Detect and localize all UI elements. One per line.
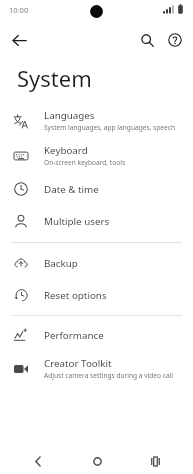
- staticText: Creator Toolkit: [44, 357, 112, 370]
- button[interactable]: Help: [162, 27, 188, 53]
- button[interactable]: Home: [77, 448, 117, 474]
- button[interactable]: Back: [18, 448, 58, 474]
- staticText: Multiple users: [44, 215, 110, 228]
- button[interactable]: Languages: [0, 103, 193, 138]
- button[interactable]: Multiple users: [0, 205, 193, 237]
- button[interactable]: Performance: [0, 319, 193, 351]
- staticText: Backup: [44, 257, 78, 270]
- staticText: Date & time: [44, 183, 99, 196]
- staticText: On-screen keyboard, tools: [44, 158, 126, 167]
- button[interactable]: Creator Toolkit: [0, 351, 193, 386]
- staticText: System: [17, 63, 92, 93]
- staticText: Languages: [44, 109, 95, 122]
- staticText: Adjust camera settings during a video ca…: [44, 371, 173, 380]
- staticText: 10:00: [9, 5, 29, 15]
- button[interactable]: Backup: [0, 247, 193, 279]
- staticText: Keyboard: [44, 144, 88, 157]
- staticText: Performance: [44, 329, 104, 342]
- button[interactable]: Keyboard: [0, 138, 193, 173]
- button[interactable]: Date & time: [0, 173, 193, 205]
- button[interactable]: Back: [6, 27, 32, 53]
- staticText: System languages, app languages, speech: [44, 123, 175, 132]
- staticText: Reset options: [44, 289, 107, 302]
- button[interactable]: Search: [134, 27, 160, 53]
- button[interactable]: Reset options: [0, 279, 193, 311]
- button[interactable]: Recent apps: [135, 448, 175, 474]
